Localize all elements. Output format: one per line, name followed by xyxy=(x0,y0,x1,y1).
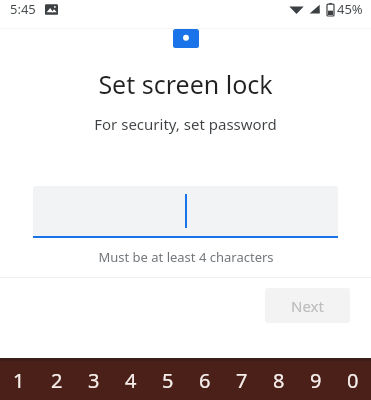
staticText: 1 xyxy=(13,367,25,394)
staticText: 7 xyxy=(236,367,248,394)
button[interactable]: 2 xyxy=(38,361,75,400)
button[interactable]: 0 xyxy=(334,361,371,400)
other: Mobile signal xyxy=(309,3,322,15)
staticText: Next xyxy=(291,296,324,316)
button[interactable]: 7 xyxy=(223,361,260,400)
staticText: 3 xyxy=(88,367,100,394)
staticText: 5 xyxy=(162,367,174,394)
button[interactable]: 8 xyxy=(260,361,297,400)
other: Battery 45 percent xyxy=(327,3,334,16)
staticText: 4 xyxy=(125,367,137,394)
staticText: Set screen lock xyxy=(98,67,273,101)
button[interactable] xyxy=(33,186,338,238)
button[interactable]: 6 xyxy=(186,361,223,400)
staticText: 9 xyxy=(310,367,322,394)
staticText: 0 xyxy=(347,367,359,394)
staticText: For security, set password xyxy=(94,114,277,134)
button[interactable]: 4 xyxy=(112,361,149,400)
staticText: 2 xyxy=(51,367,63,394)
button[interactable]: 3 xyxy=(75,361,112,400)
other: Screenshot xyxy=(45,3,58,16)
button[interactable]: Next xyxy=(265,288,350,323)
staticText: 6 xyxy=(199,367,211,394)
button[interactable]: 1 xyxy=(0,361,38,400)
other: Wi-Fi xyxy=(289,3,304,15)
staticText: 45% xyxy=(337,0,363,18)
staticText: 5:45 xyxy=(10,0,36,18)
staticText: 8 xyxy=(273,367,285,394)
staticText: Must be at least 4 characters xyxy=(98,248,274,266)
button[interactable]: 5 xyxy=(149,361,186,400)
button[interactable]: 9 xyxy=(297,361,334,400)
